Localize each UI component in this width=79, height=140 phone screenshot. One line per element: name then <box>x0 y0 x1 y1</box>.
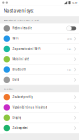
staticText: 12:30 <box>72 1 77 4</box>
button[interactable]: Zapamatování Wi-Fi <box>0 44 79 54</box>
staticText: Nastavení sys: <box>4 8 34 14</box>
staticText: Další <box>12 78 19 81</box>
staticText: Jarda <box>66 37 71 40</box>
staticText: Zapamatování Wi-Fi <box>12 47 41 51</box>
button[interactable]: Zvukové profily <box>0 92 79 102</box>
staticText: Displej <box>12 116 21 119</box>
staticText: Zap. <box>66 47 71 50</box>
staticText: Vyzváněcí tóny a hlasitost <box>12 106 47 109</box>
button[interactable]: Displej <box>0 113 79 123</box>
button[interactable]: Další <box>0 75 79 85</box>
staticText: Zap. <box>66 68 71 71</box>
staticText: Wi-Fi <box>12 37 19 40</box>
button[interactable]: Vyzváněcí tóny a hlasitost <box>0 102 79 113</box>
staticText: ZAŘÍZENÍ <box>4 88 14 90</box>
button[interactable]: Mobilní sítě <box>0 54 79 65</box>
staticText: Mobilní sítě <box>12 58 28 61</box>
button[interactable]: Režim v letadle <box>0 23 79 34</box>
button[interactable]: Zabezpečení <box>0 123 79 133</box>
staticText: Zabezpečení <box>12 126 28 130</box>
staticText: Bluetooth <box>12 68 26 71</box>
staticText: Režim v letadle <box>12 27 31 30</box>
button[interactable]: Bluetooth <box>0 65 79 75</box>
button[interactable]: Wi-Fi <box>0 34 79 44</box>
staticText: Zvukové profily <box>12 95 32 99</box>
staticText: BEZDRÁTOVÁ PŘIPOJENÍ A SÍTĚ <box>4 19 39 22</box>
